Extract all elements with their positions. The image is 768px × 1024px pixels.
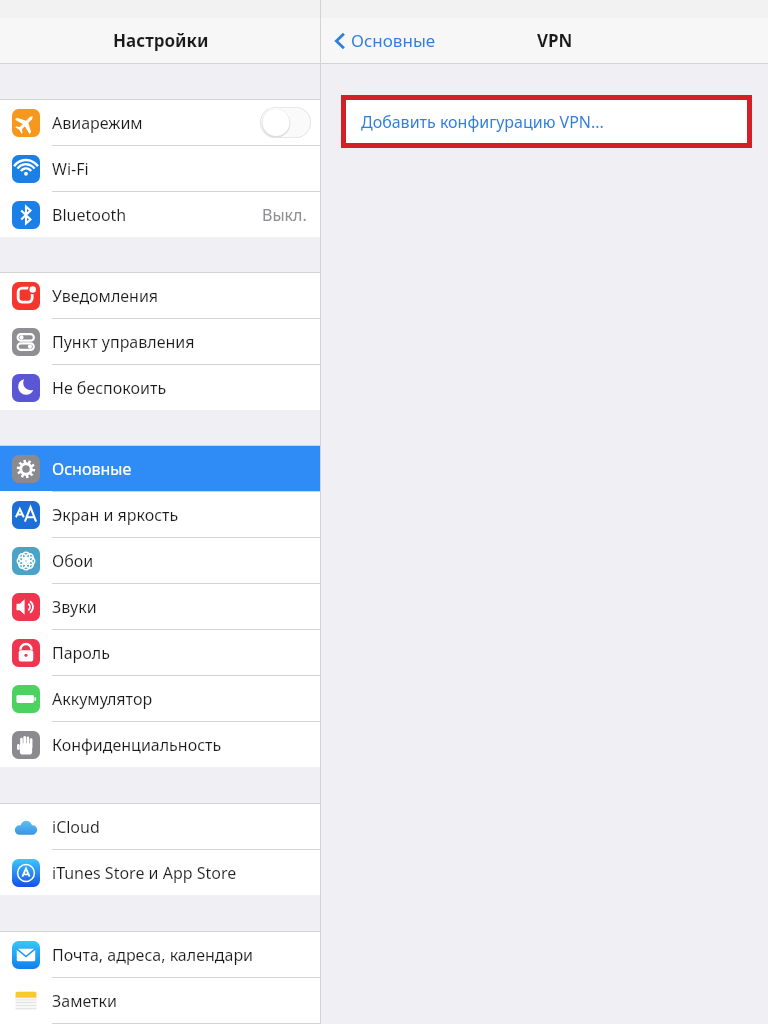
button[interactable]: Авиарежим	[0, 100, 321, 145]
staticText: Уведомления	[52, 285, 159, 307]
button[interactable]: Пункт управления	[0, 319, 321, 364]
staticText: VPN	[537, 29, 573, 52]
button[interactable]: Экран и яркость	[0, 492, 321, 537]
button[interactable]: iCloud	[0, 804, 321, 849]
button[interactable]: Основные	[333, 29, 436, 52]
staticText: Пароль	[52, 642, 110, 664]
button[interactable]: Авиарежим выключен	[260, 107, 311, 138]
button[interactable]: Пароль	[0, 630, 321, 675]
button[interactable]: Не беспокоить	[0, 365, 321, 410]
staticText: Заметки	[52, 990, 117, 1012]
staticText: Не беспокоить	[52, 377, 167, 399]
staticText: Звуки	[52, 596, 97, 618]
button[interactable]: iTunes Store и App Store	[0, 850, 321, 895]
staticText: Настройки	[113, 29, 209, 52]
staticText: Пункт управления	[52, 331, 195, 353]
staticText: Аккумулятор	[52, 688, 153, 710]
button[interactable]: Обои	[0, 538, 321, 583]
staticText: Основные	[351, 29, 436, 52]
staticText: Добавить конфигурацию VPN...	[361, 111, 604, 133]
staticText: Экран и яркость	[52, 504, 179, 526]
staticText: Почта, адреса, календари	[52, 944, 254, 966]
staticText: Основные	[52, 458, 132, 480]
staticText: Авиарежим	[52, 112, 143, 134]
button[interactable]: Bluetooth	[0, 192, 321, 237]
button[interactable]: Wi-Fi	[0, 146, 321, 191]
staticText: Bluetooth	[52, 204, 127, 226]
staticText: iCloud	[52, 816, 100, 838]
staticText: Конфиденциальность	[52, 734, 222, 756]
button[interactable]: Конфиденциальность	[0, 722, 321, 767]
button[interactable]: Аккумулятор	[0, 676, 321, 721]
button[interactable]: Уведомления	[0, 273, 321, 318]
button[interactable]: Звуки	[0, 584, 321, 629]
button[interactable]: Основные	[0, 446, 321, 491]
staticText: iTunes Store и App Store	[52, 862, 237, 884]
staticText: Обои	[52, 550, 94, 572]
button[interactable]: Заметки	[0, 978, 321, 1023]
staticText: Wi-Fi	[52, 158, 89, 180]
button[interactable]: Добавить конфигурацию VPN...	[346, 100, 747, 143]
staticText: Выкл.	[262, 204, 307, 226]
button[interactable]: Почта, адреса, календари	[0, 932, 321, 977]
